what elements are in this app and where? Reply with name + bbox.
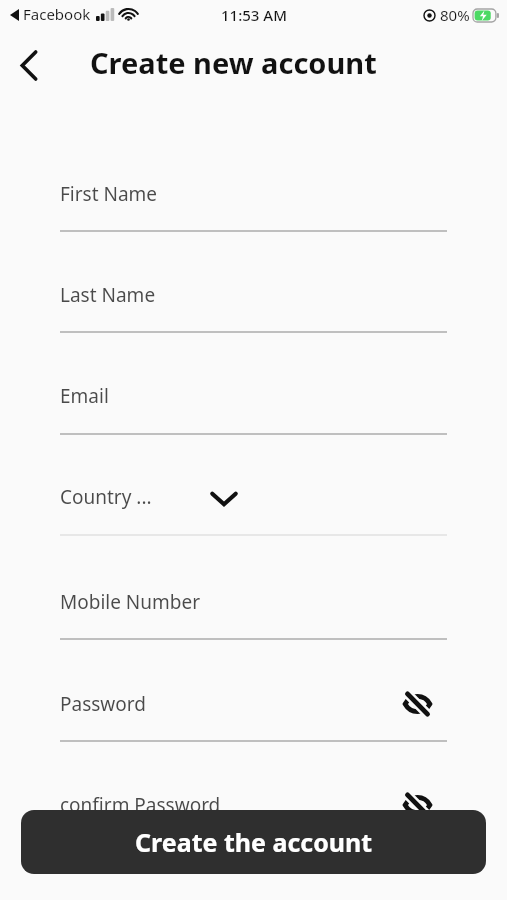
staticText: Email	[60, 383, 109, 409]
button[interactable]: Toggle password visibility	[396, 689, 438, 719]
staticText: Password	[60, 691, 146, 717]
staticText: Last Name	[60, 282, 156, 308]
button[interactable]: Mobile Number	[60, 589, 447, 642]
staticText: First Name	[60, 181, 158, 207]
button[interactable]: confirm Password	[60, 792, 447, 845]
button[interactable]: Create the account	[21, 810, 486, 874]
staticText: Create new account	[90, 43, 377, 82]
staticText: Create the account	[135, 825, 373, 859]
button[interactable]: Select country	[203, 481, 245, 515]
staticText: 80%	[440, 5, 470, 25]
button[interactable]: Password	[60, 691, 447, 744]
staticText: 11:53 AM	[221, 5, 287, 25]
button[interactable]: Last Name	[60, 282, 447, 335]
button[interactable]: Toggle password visibility	[396, 790, 438, 820]
staticText: Country ...	[60, 484, 152, 510]
button[interactable]: Country ...	[60, 484, 447, 538]
button[interactable]: Email	[60, 383, 447, 437]
button[interactable]: First Name	[60, 181, 447, 234]
staticText: Mobile Number	[60, 589, 201, 615]
staticText: Facebook	[23, 4, 91, 24]
staticText: confirm Password	[60, 792, 221, 818]
button[interactable]: Back	[8, 44, 50, 86]
